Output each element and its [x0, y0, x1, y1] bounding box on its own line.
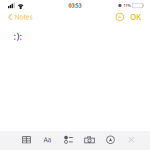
staticText: Notes — [14, 13, 32, 21]
staticText: 11% — [123, 3, 130, 8]
button[interactable]: Markup — [100, 132, 121, 147]
staticText: OK — [130, 12, 141, 22]
button[interactable]: Checklist — [58, 132, 79, 147]
button[interactable]: Table — [16, 132, 37, 147]
button[interactable]: Format — [37, 132, 58, 147]
button[interactable]: Notes — [0, 11, 32, 23]
staticText: Aa — [43, 135, 51, 144]
button[interactable]: OK — [130, 10, 141, 24]
staticText: 03:53 — [68, 2, 81, 9]
button[interactable]: Close — [121, 132, 142, 147]
staticText: :): — [13, 30, 22, 42]
button[interactable]: Camera — [79, 132, 100, 147]
button[interactable]: Collapse — [114, 11, 126, 23]
